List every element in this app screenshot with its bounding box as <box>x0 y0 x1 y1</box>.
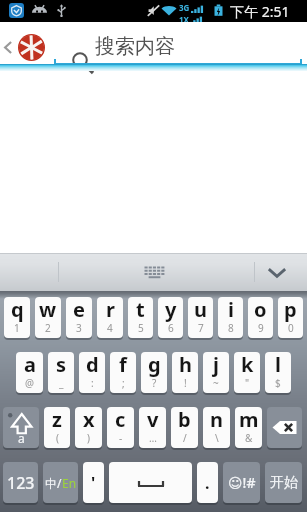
staticText: 2 <box>45 321 51 335</box>
staticText: - <box>119 431 123 445</box>
button[interactable]: Backspace <box>267 407 302 448</box>
button[interactable]: 开始 <box>265 462 302 503</box>
button[interactable]: Shift <box>3 407 39 448</box>
staticText: 3 <box>76 321 82 335</box>
staticText: ' <box>91 472 96 494</box>
staticText: b <box>178 407 191 433</box>
staticText: 7 <box>198 321 204 335</box>
staticText: i <box>228 297 234 323</box>
button[interactable]: ' <box>83 462 104 503</box>
staticText: j <box>213 352 219 378</box>
button[interactable]: g <box>141 352 167 393</box>
button[interactable]: 123 <box>3 462 38 503</box>
button[interactable]: r <box>97 297 123 338</box>
button[interactable]: a <box>16 352 43 393</box>
staticText: m <box>239 407 259 433</box>
staticText: w <box>39 297 57 323</box>
staticText: v <box>147 407 159 433</box>
staticText: : <box>91 376 94 390</box>
staticText: q <box>11 297 24 323</box>
button[interactable]: p <box>278 297 303 338</box>
staticText: d <box>86 352 99 378</box>
button[interactable]: h <box>172 352 198 393</box>
button[interactable]: Back <box>0 30 17 64</box>
button[interactable]: b <box>171 407 198 448</box>
button[interactable]: l <box>265 352 291 393</box>
staticText: e <box>73 297 85 323</box>
staticText: $ <box>275 376 281 390</box>
staticText: ? <box>152 376 157 390</box>
staticText: 0 <box>288 321 294 335</box>
staticText: ~ <box>213 376 219 390</box>
staticText: / <box>183 431 187 445</box>
button[interactable]: m <box>235 407 262 448</box>
button[interactable]: e <box>66 297 92 338</box>
staticText: _ <box>59 376 64 390</box>
staticText: a <box>24 352 36 378</box>
staticText: 123 <box>7 472 35 494</box>
button[interactable]: d <box>79 352 105 393</box>
staticText: z <box>52 407 62 433</box>
button[interactable]: y <box>158 297 183 338</box>
button[interactable]: Space <box>109 462 192 503</box>
staticText: a <box>18 430 25 446</box>
button[interactable]: o <box>248 297 273 338</box>
staticText: p <box>284 297 297 323</box>
staticText: " <box>245 376 250 390</box>
staticText: o <box>254 297 267 323</box>
staticText: 3G <box>179 2 190 13</box>
button[interactable]: 中/ <box>43 462 78 503</box>
button[interactable]: n <box>203 407 230 448</box>
button[interactable]: k <box>234 352 260 393</box>
staticText: k <box>241 352 254 378</box>
staticText: s <box>56 352 67 378</box>
button[interactable]: App logo <box>16 32 47 63</box>
staticText: 5 <box>138 321 144 335</box>
staticText: n <box>210 407 223 433</box>
staticText: En <box>62 475 77 491</box>
button[interactable]: t <box>128 297 153 338</box>
button[interactable]: . <box>197 462 218 503</box>
staticText: @ <box>25 376 34 390</box>
button[interactable]: ☺!# <box>223 462 260 503</box>
staticText: \ <box>215 431 219 445</box>
button[interactable]: f <box>110 352 136 393</box>
staticText: . <box>205 472 210 494</box>
staticText: 1 <box>14 321 20 335</box>
staticText: 1X <box>179 14 189 24</box>
staticText: ) <box>87 431 90 445</box>
staticText: u <box>194 297 207 323</box>
staticText: ; <box>122 376 125 390</box>
staticText: 4 <box>107 321 113 335</box>
staticText: ( <box>56 431 59 445</box>
staticText: f <box>119 352 127 378</box>
staticText: 开始 <box>270 474 298 492</box>
staticText: c <box>115 407 126 433</box>
staticText: l <box>275 352 281 378</box>
staticText: r <box>106 297 115 323</box>
button[interactable]: x <box>75 407 102 448</box>
staticText: 8 <box>228 321 234 335</box>
button[interactable]: u <box>188 297 213 338</box>
staticText: t <box>136 297 145 323</box>
button[interactable]: j <box>203 352 229 393</box>
button[interactable]: w <box>35 297 61 338</box>
button[interactable]: i <box>218 297 243 338</box>
button[interactable]: Hide keyboard <box>265 260 289 284</box>
staticText: 6 <box>168 321 174 335</box>
button[interactable]: v <box>139 407 166 448</box>
staticText: h <box>179 352 192 378</box>
staticText: 下午 2:51 <box>230 2 290 21</box>
staticText: g <box>148 352 161 378</box>
button[interactable]: Switch keyboard <box>139 261 169 283</box>
button[interactable]: q <box>4 297 30 338</box>
staticText: y <box>165 297 177 323</box>
staticText: & <box>245 431 253 445</box>
staticText: 9 <box>258 321 264 335</box>
staticText: x <box>83 407 95 433</box>
staticText: ! <box>184 376 187 390</box>
button[interactable]: c <box>107 407 134 448</box>
button[interactable]: s <box>48 352 74 393</box>
staticText: 中/ <box>45 475 62 491</box>
button[interactable]: z <box>44 407 70 448</box>
